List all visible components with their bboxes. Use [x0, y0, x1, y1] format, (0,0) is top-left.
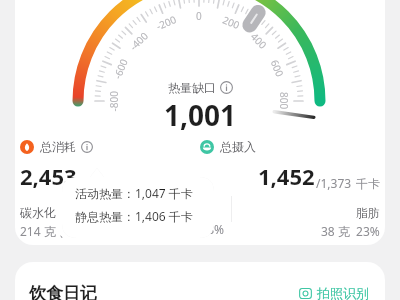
staticText: 千卡 [356, 176, 380, 191]
staticText: 脂肪 [356, 205, 380, 220]
staticText: 38 克 23% [321, 223, 380, 239]
staticText: /1,373 [316, 175, 352, 191]
staticText: 静息热量：1,406 千卡 [75, 208, 193, 224]
button[interactable]: 拍照识别 [295, 281, 373, 300]
staticText: 1,452 [258, 161, 315, 191]
staticText: 1,001 [164, 96, 237, 134]
other: 拍照识别 [299, 287, 312, 300]
staticText: .8% [204, 221, 225, 237]
staticText: 拍照识别 [317, 285, 369, 300]
button[interactable]: 总消耗 [20, 139, 93, 154]
button[interactable]: 饮食日记 [15, 262, 385, 300]
button[interactable]: 总摄入 [200, 139, 380, 154]
staticText: 214 克 、 [20, 223, 71, 239]
staticText: 活动热量：1,047 千卡 [75, 185, 193, 201]
staticText: 总摄入 [220, 139, 256, 154]
staticText: 总消耗 [40, 139, 76, 154]
staticText: 热量缺口 [168, 80, 216, 95]
button[interactable] [15, 0, 385, 245]
staticText: 碳水化 [20, 205, 56, 220]
staticText: 2,453 [20, 161, 77, 191]
staticText: 饮食日记 [29, 283, 97, 300]
